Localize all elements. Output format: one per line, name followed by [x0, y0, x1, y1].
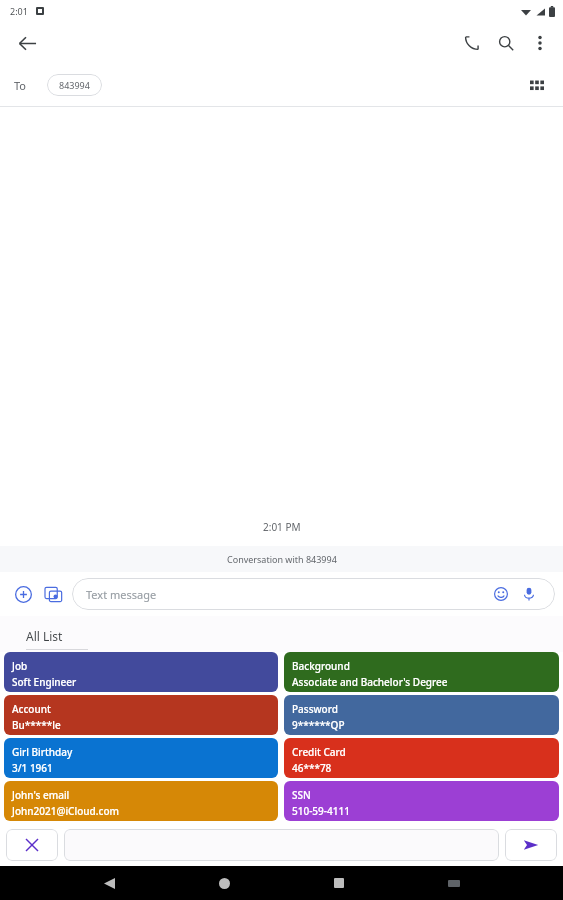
staticText: 510-59-4111 — [292, 804, 350, 818]
button[interactable]: John's email — [4, 781, 278, 821]
button[interactable]: Password — [284, 695, 559, 735]
staticText: To — [14, 78, 27, 93]
button[interactable]: Add attachment — [8, 579, 38, 609]
button[interactable]: Home — [209, 868, 239, 898]
staticText: 843994 — [59, 79, 90, 91]
staticText: Text message — [86, 587, 489, 602]
staticText: Credit Card — [292, 745, 346, 759]
button[interactable]: Call — [455, 26, 489, 60]
button[interactable] — [64, 829, 499, 861]
staticText: Password — [292, 702, 338, 716]
staticText: John2021@iCloud.com — [12, 804, 119, 818]
staticText: SSN — [292, 788, 311, 802]
button[interactable]: Voice input — [517, 582, 541, 606]
button[interactable]: Account — [4, 695, 278, 735]
button[interactable]: Credit Card — [284, 738, 559, 778]
staticText: 3/1 1961 — [12, 761, 53, 775]
button[interactable]: 843994 — [47, 74, 102, 96]
button[interactable]: More options — [523, 26, 557, 60]
button[interactable]: Girl Birthday — [4, 738, 278, 778]
staticText: Account — [12, 702, 51, 716]
staticText: Background — [292, 659, 350, 673]
button[interactable]: All List — [18, 626, 96, 652]
staticText: 9******QP — [292, 718, 345, 732]
button[interactable]: Job — [4, 652, 278, 692]
button[interactable]: Background — [284, 652, 559, 692]
button[interactable]: Send photo — [38, 579, 68, 609]
button[interactable]: Emoji — [489, 582, 513, 606]
button[interactable]: Back — [94, 868, 124, 898]
button[interactable]: Back — [10, 26, 44, 60]
staticText: All List — [26, 628, 63, 644]
staticText: John's email — [12, 788, 70, 802]
staticText: Conversation with 843994 — [227, 553, 337, 565]
button[interactable]: Add contact — [521, 69, 553, 101]
staticText: Associate and Bachelor's Degree — [292, 675, 448, 689]
button[interactable]: Search — [489, 26, 523, 60]
staticText: 46***78 — [292, 761, 332, 775]
button[interactable]: Keyboard — [439, 868, 469, 898]
staticText: Bu*****le — [12, 718, 61, 732]
staticText: 2:01 PM — [263, 520, 301, 534]
button[interactable]: Send — [505, 829, 557, 861]
button[interactable]: Close — [6, 829, 58, 861]
button[interactable]: SSN — [284, 781, 559, 821]
staticText: Girl Birthday — [12, 745, 73, 759]
button[interactable]: Recents — [324, 868, 354, 898]
staticText: Job — [12, 659, 28, 673]
button[interactable]: Text message — [72, 578, 555, 610]
staticText: 2:01 — [10, 5, 28, 17]
staticText: Soft Engineer — [12, 675, 77, 689]
